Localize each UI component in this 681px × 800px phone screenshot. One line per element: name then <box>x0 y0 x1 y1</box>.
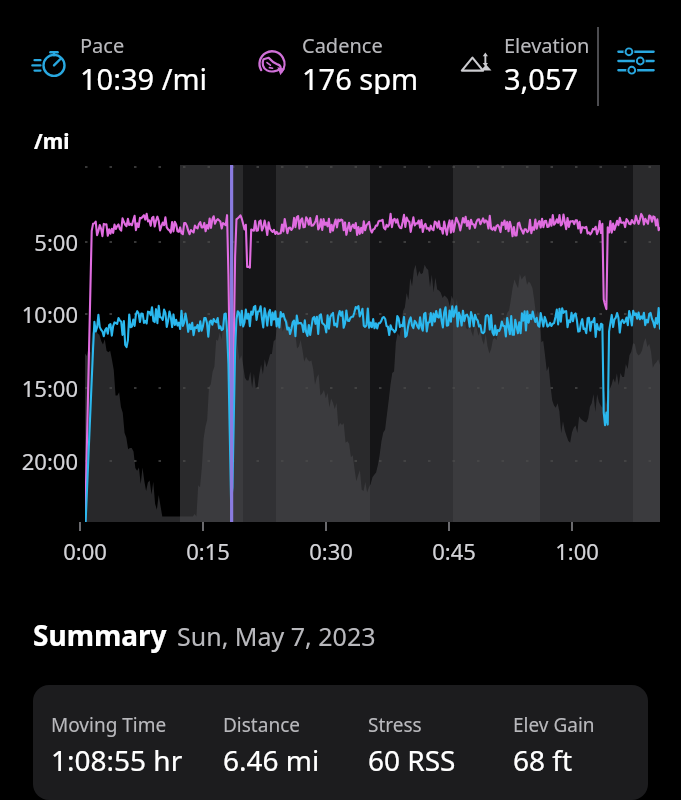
staticText: 0:45 <box>408 536 500 566</box>
staticText: Stress <box>368 712 422 738</box>
button[interactable]: Elevation <box>458 32 590 94</box>
staticText: 60 RSS <box>368 741 456 779</box>
staticText: Moving Time <box>51 712 167 738</box>
button[interactable]: Pace <box>30 32 208 94</box>
staticText: 5:00 <box>6 227 78 257</box>
staticText: 20:00 <box>6 446 78 476</box>
staticText: Cadence <box>302 32 383 59</box>
staticText: 68 ft <box>513 741 573 779</box>
staticText: Distance <box>223 712 300 738</box>
staticText: 0:30 <box>285 536 377 566</box>
staticText: Summary <box>33 616 167 654</box>
staticText: 15:00 <box>6 373 78 403</box>
staticText: 176 spm <box>302 59 419 94</box>
staticText: /mi <box>34 127 70 156</box>
button[interactable]: Cadence <box>252 32 419 94</box>
staticText: 10:39 /mi <box>80 59 208 94</box>
staticText: 6.46 mi <box>223 741 320 779</box>
staticText: 1:00 <box>531 536 623 566</box>
staticText: 10:00 <box>6 299 78 329</box>
staticText: 1:08:55 hr <box>51 741 183 779</box>
staticText: 0:15 <box>162 536 254 566</box>
staticText: 0:00 <box>39 536 131 566</box>
button[interactable]: Chart settings <box>608 33 664 89</box>
staticText: 3,057 <box>504 59 579 94</box>
staticText: Sun, May 7, 2023 <box>177 619 376 653</box>
button[interactable]: Moving Time <box>33 685 648 800</box>
button[interactable]: Pace and cadence chart <box>85 165 660 522</box>
staticText: Elevation <box>504 32 590 59</box>
staticText: Elev Gain <box>513 712 595 738</box>
staticText: Pace <box>80 32 125 59</box>
